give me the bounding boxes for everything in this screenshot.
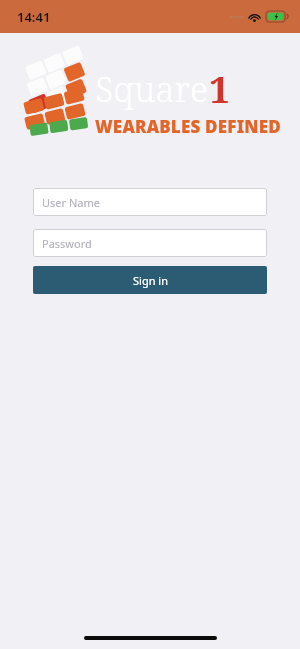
staticText: Password	[42, 236, 92, 251]
staticText: WEARABLES DEFINED	[95, 115, 281, 138]
staticText: 14:41	[17, 8, 51, 26]
staticText: Sign in	[133, 273, 168, 288]
button[interactable]: Sign in	[33, 266, 267, 294]
button[interactable]: Password	[33, 229, 267, 257]
other: Square1 logo	[22, 59, 102, 141]
staticText: 1	[209, 63, 230, 113]
staticText: User Name	[42, 195, 100, 210]
staticText: Square	[95, 65, 209, 113]
button[interactable]: User Name	[33, 188, 267, 216]
